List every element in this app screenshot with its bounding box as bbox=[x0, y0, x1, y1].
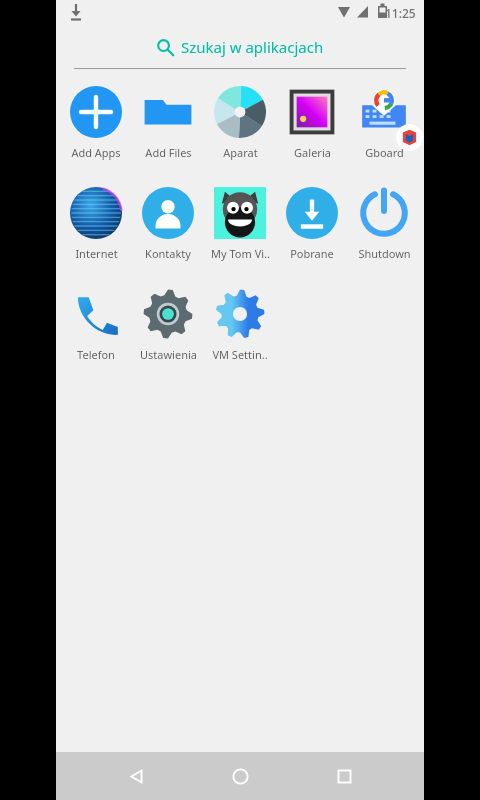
button[interactable]: Galeria bbox=[276, 85, 348, 160]
button[interactable]: Aparat bbox=[204, 85, 276, 160]
button[interactable]: My Tom Vi.. bbox=[204, 186, 276, 261]
button[interactable]: Internet bbox=[60, 186, 132, 261]
button[interactable]: Add Files bbox=[132, 85, 204, 160]
staticText: Internet bbox=[75, 246, 118, 261]
button[interactable]: VM Settin.. bbox=[204, 287, 276, 362]
staticText: Pobrane bbox=[290, 246, 334, 261]
button[interactable]: Shutdown bbox=[348, 186, 420, 261]
button[interactable]: Add Apps bbox=[60, 85, 132, 160]
staticText: VM Settin.. bbox=[212, 347, 268, 362]
button[interactable]: Gboard bbox=[348, 85, 420, 160]
button[interactable]: Home bbox=[216, 752, 264, 800]
staticText: Shutdown bbox=[358, 246, 411, 261]
button[interactable]: Szukaj w aplikacjach bbox=[56, 26, 424, 69]
staticText: Galeria bbox=[294, 145, 331, 160]
staticText: Ustawienia bbox=[140, 347, 197, 362]
button[interactable]: Pobrane bbox=[276, 186, 348, 261]
button[interactable]: Back bbox=[112, 752, 160, 800]
staticText: Telefon bbox=[77, 347, 115, 362]
staticText: Gboard bbox=[365, 145, 404, 160]
button[interactable]: Recents bbox=[320, 752, 368, 800]
button[interactable]: Telefon bbox=[60, 287, 132, 362]
button[interactable]: Ustawienia bbox=[132, 287, 204, 362]
staticText: Aparat bbox=[223, 145, 258, 160]
staticText: Add Files bbox=[145, 145, 192, 160]
staticText: Add Apps bbox=[71, 145, 121, 160]
staticText: Kontakty bbox=[145, 246, 191, 261]
staticText: My Tom Vi.. bbox=[211, 246, 270, 261]
button[interactable]: Kontakty bbox=[132, 186, 204, 261]
staticText: 11:25 bbox=[385, 5, 416, 21]
staticText: Szukaj w aplikacjach bbox=[181, 37, 324, 57]
